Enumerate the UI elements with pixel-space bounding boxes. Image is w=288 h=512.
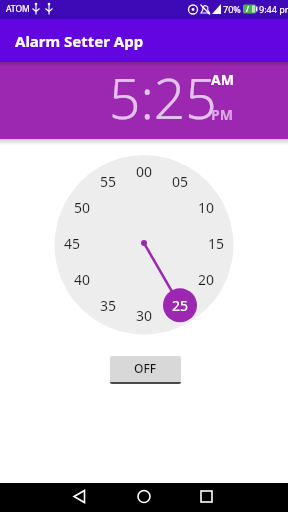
staticText: 50 (74, 198, 91, 217)
staticText: 20 (198, 270, 215, 289)
staticText: 15 (208, 234, 225, 253)
staticText: 05 (172, 172, 189, 191)
staticText: 25 (172, 296, 189, 315)
button[interactable] (192, 483, 288, 512)
staticText: 45 (64, 234, 81, 253)
staticText: 70% (223, 3, 241, 15)
staticText: 9:44 pm (259, 3, 288, 15)
staticText: 55 (100, 172, 117, 191)
button[interactable] (96, 483, 192, 512)
staticText: ATOM (6, 3, 30, 15)
button[interactable]: OFF (110, 356, 181, 384)
button[interactable]: PM (211, 105, 233, 124)
staticText: 30 (136, 306, 153, 325)
staticText: 00 (136, 162, 153, 181)
button[interactable] (0, 483, 96, 512)
staticText: 35 (100, 296, 117, 315)
button[interactable]: AM (211, 70, 234, 89)
staticText: 5:25 (109, 60, 217, 135)
staticText: OFF (134, 360, 157, 376)
staticText: Alarm Setter App (15, 31, 144, 51)
staticText: 10 (198, 198, 215, 217)
staticText: 40 (74, 270, 91, 289)
